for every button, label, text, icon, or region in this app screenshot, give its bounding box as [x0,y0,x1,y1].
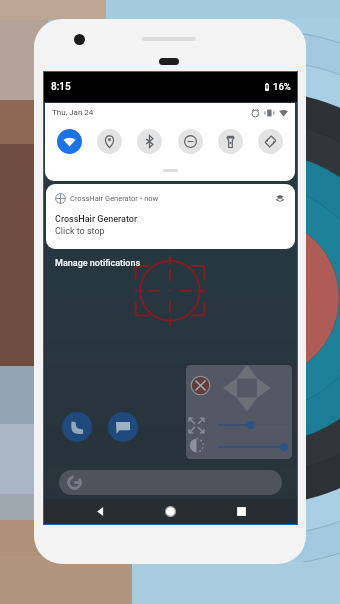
button[interactable]: Messages [108,412,138,442]
button[interactable]: CrossHair Generator • now [46,184,295,249]
button[interactable]: Auto rotate [258,129,283,154]
button[interactable]: Close [190,375,211,396]
button[interactable]: Back [88,499,112,524]
button[interactable]: Flashlight [218,129,243,154]
button[interactable]: Wi-Fi [57,129,82,154]
staticText: CrossHair Generator [55,214,138,225]
staticText: 8:15 [51,81,71,93]
button[interactable]: Recents [229,499,253,524]
button[interactable]: Phone [62,412,92,442]
button[interactable]: Do not disturb [178,129,203,154]
staticText: 16% [273,81,291,92]
staticText: CrossHair Generator • now [70,194,159,203]
button[interactable]: Search [59,470,282,495]
button[interactable]: Manage notifications [55,258,141,269]
button[interactable]: Location [97,129,122,154]
staticText: Thu, Jan 24 [52,108,94,117]
button[interactable]: Bluetooth [137,129,162,154]
staticText: Click to stop [55,226,105,237]
button[interactable]: Size [218,419,288,431]
button[interactable]: Home [158,499,182,524]
button[interactable]: Move crosshair [223,365,271,412]
button[interactable]: Opacity [218,441,288,453]
